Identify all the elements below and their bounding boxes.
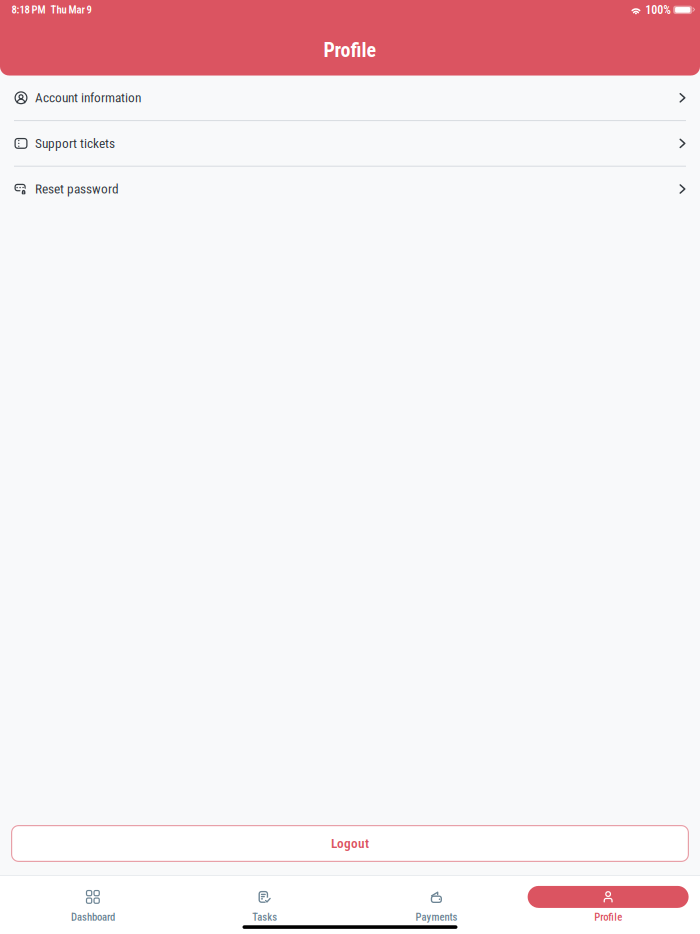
- button[interactable]: Dashboard: [7, 886, 179, 923]
- staticText: Support tickets: [35, 136, 115, 151]
- button[interactable]: Profile: [522, 886, 694, 923]
- staticText: Profile: [594, 911, 622, 923]
- button[interactable]: Support tickets: [0, 121, 700, 166]
- button[interactable]: Payments: [350, 886, 522, 923]
- staticText: Dashboard: [71, 911, 115, 923]
- staticText: Reset password: [35, 181, 119, 197]
- staticText: 8:18 PM: [11, 4, 45, 16]
- staticText: Payments: [415, 911, 457, 923]
- button[interactable]: Account information: [0, 75, 700, 120]
- staticText: Account information: [35, 90, 141, 105]
- staticText: Thu Mar 9: [50, 4, 91, 16]
- staticText: Profile: [323, 39, 376, 61]
- staticText: 100%: [645, 3, 671, 17]
- staticText: Tasks: [252, 911, 277, 923]
- button[interactable]: Logout: [11, 825, 689, 862]
- button[interactable]: Reset password: [0, 167, 700, 211]
- staticText: Logout: [331, 836, 369, 851]
- button[interactable]: Tasks: [179, 886, 351, 923]
